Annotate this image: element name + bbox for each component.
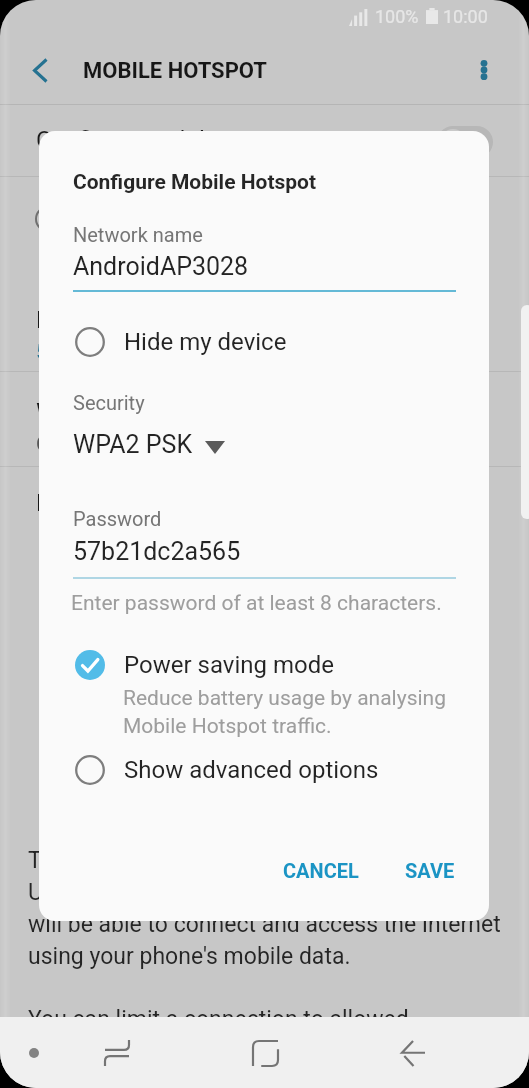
staticText: 5 GHz [36,340,91,363]
staticText: Configure Mobile Hotspot [36,126,310,154]
staticText: Off [36,432,64,455]
button[interactable]: Home [241,1029,289,1077]
staticText: SAVE [405,859,455,882]
staticText: 57b21dc2a565 [73,537,241,566]
button[interactable]: CANCEL [271,847,371,894]
button[interactable]: Power saving mode [39,645,489,685]
staticText: WPA2 PSK [73,430,193,459]
staticText: Security [73,391,145,414]
button[interactable]: Show advanced options [39,749,489,791]
staticText: CANCEL [283,859,359,882]
button[interactable]: Recent apps [93,1029,141,1077]
staticText: Reduce battery usage by analysing Mobile… [123,686,446,738]
staticText: Show advanced options [124,756,379,784]
staticText: Hide my device [124,328,287,356]
staticText: Configure Mobile Hotspot [73,170,317,195]
staticText: AndroidAP3028 [73,252,249,281]
staticText: Mobile Hotspot [36,306,201,334]
button[interactable]: SAVE [393,847,467,894]
staticText: Power saving mode [124,651,334,679]
staticText: Turn on Mobile Hotspot so other Use a di… [28,847,501,970]
button[interactable]: More options [464,50,504,90]
staticText: MOBILE HOTSPOT [83,58,267,84]
staticText: Password [36,489,143,517]
staticText: You can limit a connection to allowed [28,1006,409,1033]
staticText: Network name [73,223,203,246]
button[interactable]: Navigate up [20,50,60,90]
button[interactable]: Back [389,1029,437,1077]
staticText: 100% [375,6,419,27]
staticText: Wi-Fi sharing [36,398,175,426]
button[interactable]: Navigation bar hint [14,1033,54,1073]
button[interactable]: Hide my device [39,321,489,363]
staticText: 10:00 [443,6,488,27]
staticText: Enter password of at least 8 characters. [71,591,442,616]
staticText: Password [73,507,162,530]
button[interactable]: WPA2 PSK [73,430,225,459]
